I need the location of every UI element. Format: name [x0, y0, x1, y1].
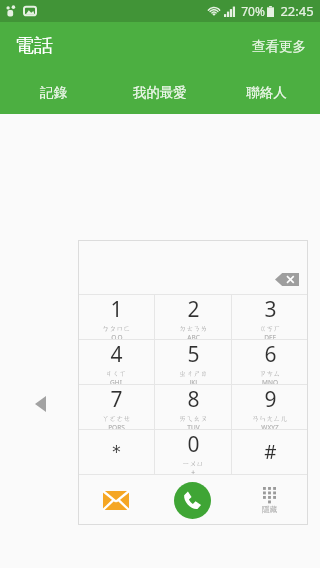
staticText: 22:45	[280, 2, 314, 20]
staticText: #	[264, 439, 277, 465]
staticText: 記錄	[40, 84, 67, 101]
staticText: JKL	[189, 378, 199, 384]
button[interactable]: 9	[232, 385, 308, 429]
button[interactable]: Message	[78, 475, 154, 525]
button[interactable]: 3	[232, 295, 308, 339]
staticText: 聯絡人	[246, 84, 287, 101]
staticText: ㄢㄣㄤㄥㄦ	[252, 414, 288, 423]
button[interactable]: 2	[155, 295, 231, 339]
staticText: 隱藏	[262, 505, 277, 514]
button[interactable]: #	[232, 430, 308, 474]
button[interactable]: 6	[232, 340, 308, 384]
staticText: ABC	[187, 333, 200, 339]
button[interactable]: 聯絡人	[213, 70, 320, 114]
staticText: 2	[187, 295, 200, 324]
staticText: Q.O	[111, 333, 123, 339]
staticText: ㄞㄟㄠㄡ	[179, 414, 208, 423]
button[interactable]: 5	[155, 340, 231, 384]
button[interactable]: 8	[155, 385, 231, 429]
button[interactable]: 我的最愛	[106, 70, 213, 114]
button[interactable]: Backspace	[272, 269, 302, 289]
staticText: 7	[110, 385, 123, 414]
staticText: 1	[110, 295, 123, 324]
staticText: ㄍㄎㄏ	[259, 324, 281, 333]
staticText: PQRS	[108, 423, 125, 429]
staticText: ㄗㄘㄙ	[259, 369, 281, 378]
staticText: 電話	[15, 34, 53, 58]
staticText: MNO	[262, 378, 278, 384]
button[interactable]: Hide keypad	[231, 475, 308, 525]
staticText: TUV	[187, 423, 200, 429]
staticText: ㄉㄊㄋㄌ	[179, 324, 208, 333]
staticText: 5	[187, 340, 200, 369]
staticText: 3	[264, 295, 277, 324]
staticText: ＊	[107, 440, 126, 464]
staticText: 4	[110, 340, 123, 369]
button[interactable]: 查看更多	[244, 32, 314, 61]
button[interactable]: 4	[78, 340, 154, 384]
button[interactable]: 7	[78, 385, 154, 429]
staticText: WXYZ	[261, 423, 279, 429]
button[interactable]: ＊	[78, 430, 154, 474]
button[interactable]: 1	[78, 295, 154, 339]
staticText: GHI	[110, 378, 122, 384]
staticText: 70%	[241, 3, 265, 19]
staticText: 6	[264, 340, 277, 369]
staticText: ㄧㄨㄩ	[182, 459, 204, 468]
staticText: 0	[187, 430, 200, 459]
staticText: DEF	[264, 333, 276, 339]
staticText: ㄅㄆㄇㄈ	[102, 324, 131, 333]
staticText: ㄐㄑㄒ	[105, 369, 127, 378]
button[interactable]: 記錄	[0, 70, 106, 114]
button[interactable]: 0	[155, 430, 231, 474]
staticText: 8	[187, 385, 200, 414]
staticText: ㄓㄔㄕㄖ	[179, 369, 208, 378]
staticText: 我的最愛	[133, 84, 187, 101]
staticText: 9	[264, 385, 277, 414]
staticText: +	[191, 468, 195, 474]
button[interactable]: Previous page	[28, 392, 52, 416]
staticText: ㄚㄛㄜㄝ	[102, 414, 131, 423]
button[interactable]: Call	[154, 475, 231, 525]
staticText: 查看更多	[252, 38, 306, 55]
